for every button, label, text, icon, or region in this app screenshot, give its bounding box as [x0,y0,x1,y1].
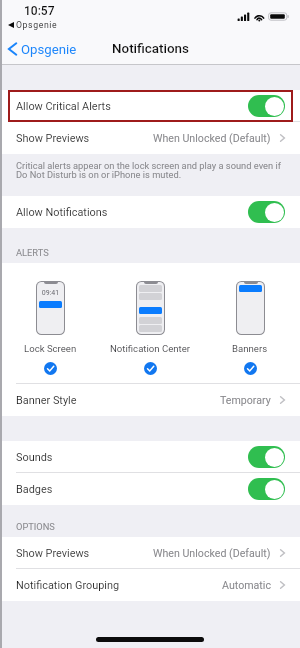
staticText: When Unlocked (Default) [153,132,271,144]
button[interactable]: Allow Notifications [248,201,285,223]
staticText: 10:57 [24,4,55,18]
button[interactable]: Show Previews [0,122,300,154]
button[interactable]: Notification Center [100,281,200,375]
staticText: Temporary [220,394,271,406]
button[interactable]: Banner Style [0,384,300,416]
staticText: Opsgenie [16,20,58,30]
button[interactable]: Notification Center selected [144,362,157,375]
button[interactable]: Banners [200,281,300,375]
staticText: Badges [16,483,53,496]
staticText: Show Previews [16,132,90,145]
button[interactable]: Sounds [248,446,285,468]
button[interactable]: Allow Critical Alerts [0,90,300,122]
button[interactable]: Lock Screen selected [44,362,57,375]
button[interactable]: 09:41 [0,281,100,375]
staticText: When Unlocked (Default) [153,547,271,559]
button[interactable]: Allow Critical Alerts [248,95,285,117]
button[interactable]: Notification Grouping [0,569,300,601]
staticText: 09:41 [37,289,64,297]
staticText: Banners [232,343,268,354]
staticText: Show Previews [16,547,90,560]
staticText: Lock Screen [24,343,77,354]
staticText: Notification Grouping [16,579,120,592]
staticText: Banner Style [16,394,77,407]
staticText: Allow Notifications [16,206,108,219]
staticText: Automatic [222,579,271,591]
button[interactable]: Sounds [0,441,300,473]
staticText: Opsgenie [21,42,77,57]
button[interactable]: Badges [248,478,285,500]
staticText: Allow Critical Alerts [16,100,111,113]
button[interactable]: Show Previews [0,537,300,569]
staticText: OPTIONS [16,521,55,532]
staticText: Notification Center [110,343,191,354]
staticText: Critical alerts appear on the lock scree… [16,160,290,181]
button[interactable]: Allow Notifications [0,196,300,228]
staticText: Sounds [16,451,53,464]
button[interactable]: Badges [0,473,300,505]
button[interactable]: Banners selected [244,362,257,375]
staticText: ALERTS [16,247,49,258]
button[interactable]: Opsgenie [8,33,300,65]
staticText: Notifications [112,41,189,57]
